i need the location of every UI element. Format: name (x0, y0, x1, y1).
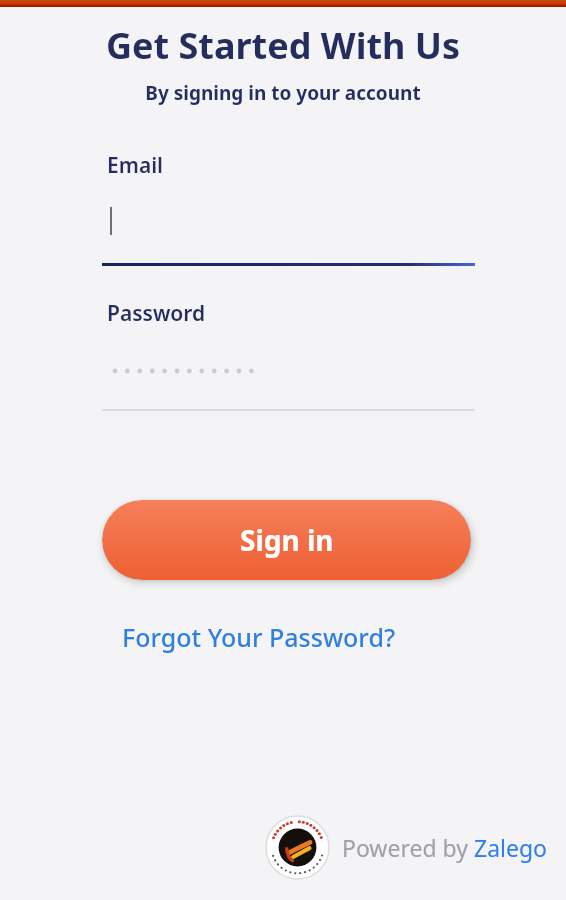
staticText: By signing in to your account (0, 80, 566, 106)
staticText: Sign in (240, 521, 334, 559)
staticText: Powered by (342, 832, 474, 863)
button[interactable]: Zalego (474, 832, 548, 863)
staticText: Get Started With Us (0, 21, 566, 70)
staticText: Password (107, 299, 206, 328)
staticText: Email (107, 151, 164, 180)
button[interactable]: Sign in (102, 500, 471, 580)
button[interactable]: Forgot Your Password? (122, 620, 396, 654)
